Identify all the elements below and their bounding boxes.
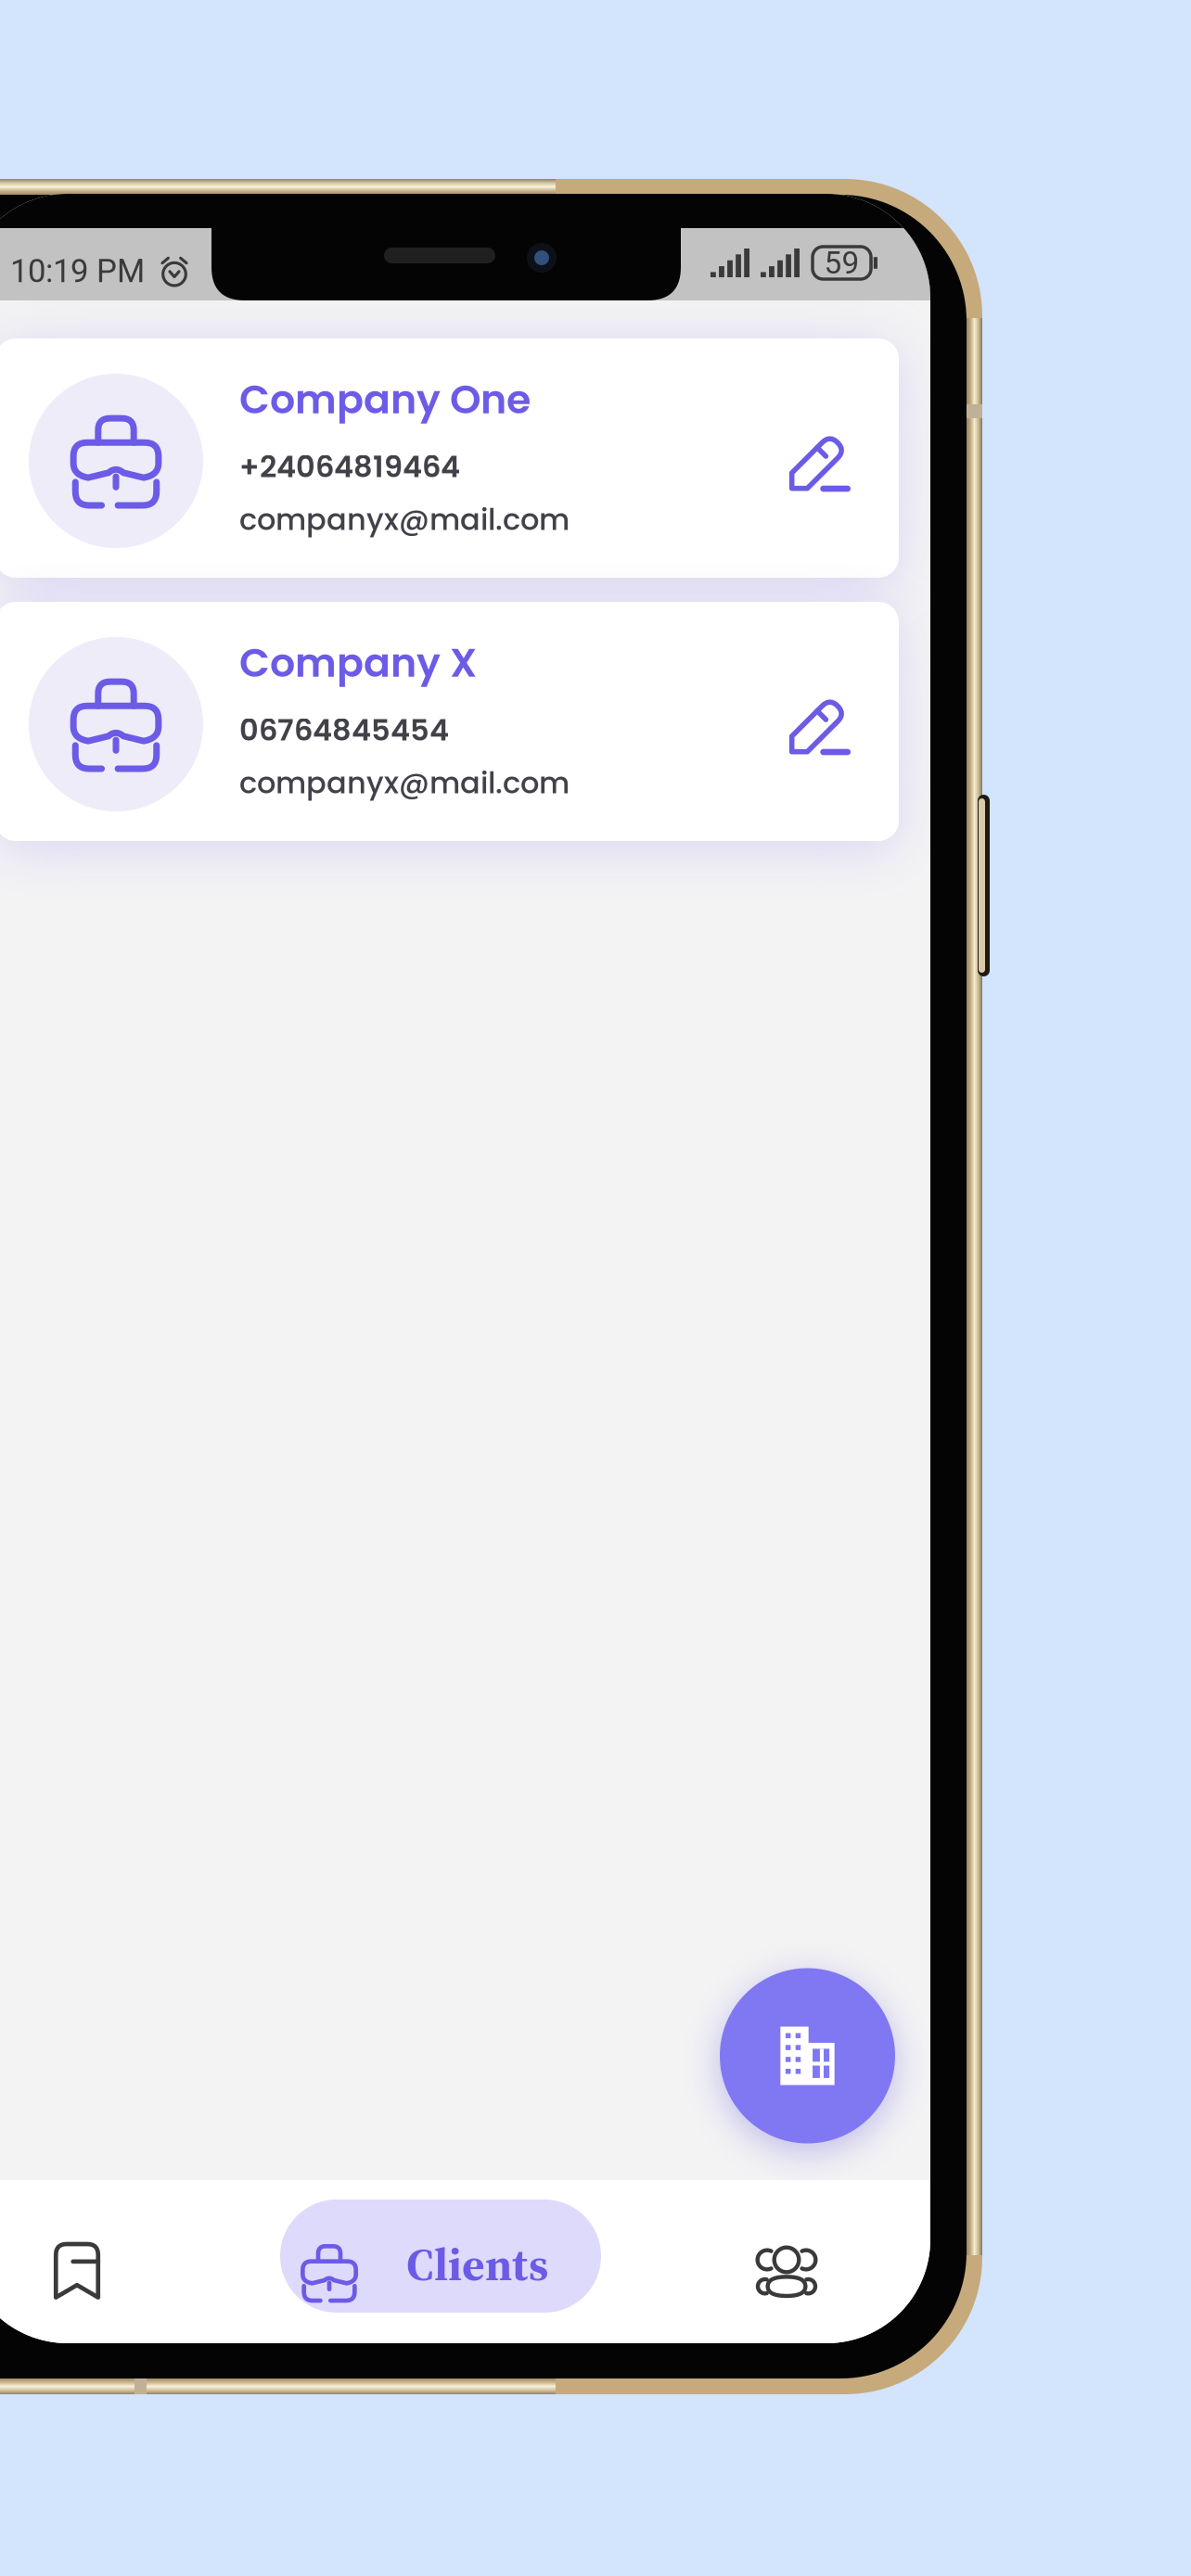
staticText: Company One <box>239 372 531 427</box>
staticText: Clients <box>406 2233 548 2296</box>
staticText: 06764845454 <box>239 709 449 751</box>
staticText: Company X <box>239 635 477 691</box>
button[interactable]: Team <box>717 2198 856 2337</box>
button[interactable]: Company One <box>0 338 899 578</box>
button[interactable]: Clients <box>280 2200 601 2313</box>
button[interactable]: Saved <box>7 2200 147 2339</box>
staticText: companyx@mail.com <box>239 762 570 804</box>
staticText: 59 <box>824 245 859 281</box>
staticText: 10:19 PM <box>10 252 145 290</box>
button[interactable]: Company X <box>0 602 899 841</box>
staticText: +24064819464 <box>239 446 460 488</box>
button[interactable]: Add company <box>720 1968 895 2144</box>
staticText: companyx@mail.com <box>239 499 570 540</box>
